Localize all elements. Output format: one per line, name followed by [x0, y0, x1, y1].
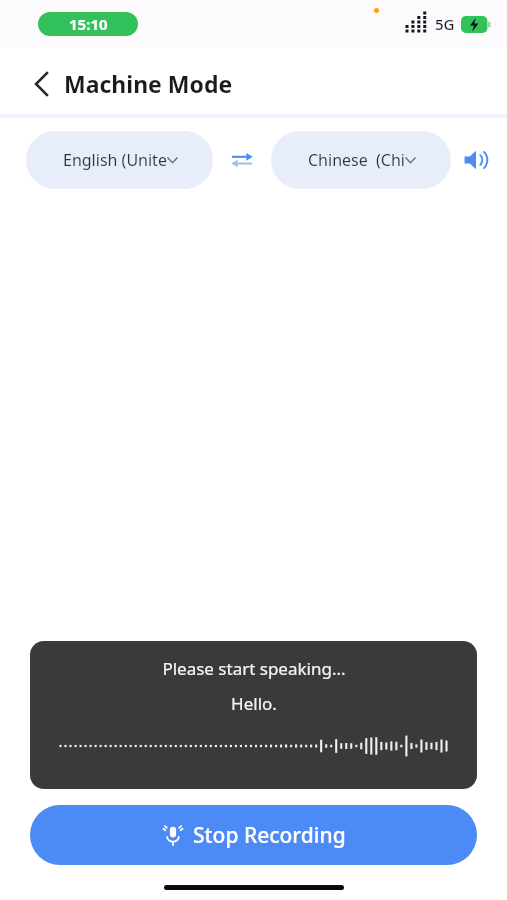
staticText: Chinese (Chi: [308, 149, 405, 171]
staticText: Please start speaking...: [162, 657, 346, 680]
staticText: Stop Recording: [193, 821, 346, 850]
button[interactable]: Back: [26, 69, 56, 99]
button[interactable]: Please start speaking...: [30, 641, 477, 789]
staticText: Machine Mode: [64, 68, 233, 99]
staticText: English (Unite: [63, 149, 167, 171]
staticText: 5G: [435, 14, 455, 34]
button[interactable]: English (Unite: [26, 131, 213, 189]
button[interactable]: Swap languages: [225, 143, 259, 177]
button[interactable]: Stop Recording: [30, 805, 477, 865]
staticText: Hello.: [231, 692, 277, 715]
button[interactable]: Play audio: [461, 142, 491, 178]
staticText: 15:10: [69, 14, 108, 34]
button[interactable]: Chinese (Chi: [271, 131, 451, 189]
